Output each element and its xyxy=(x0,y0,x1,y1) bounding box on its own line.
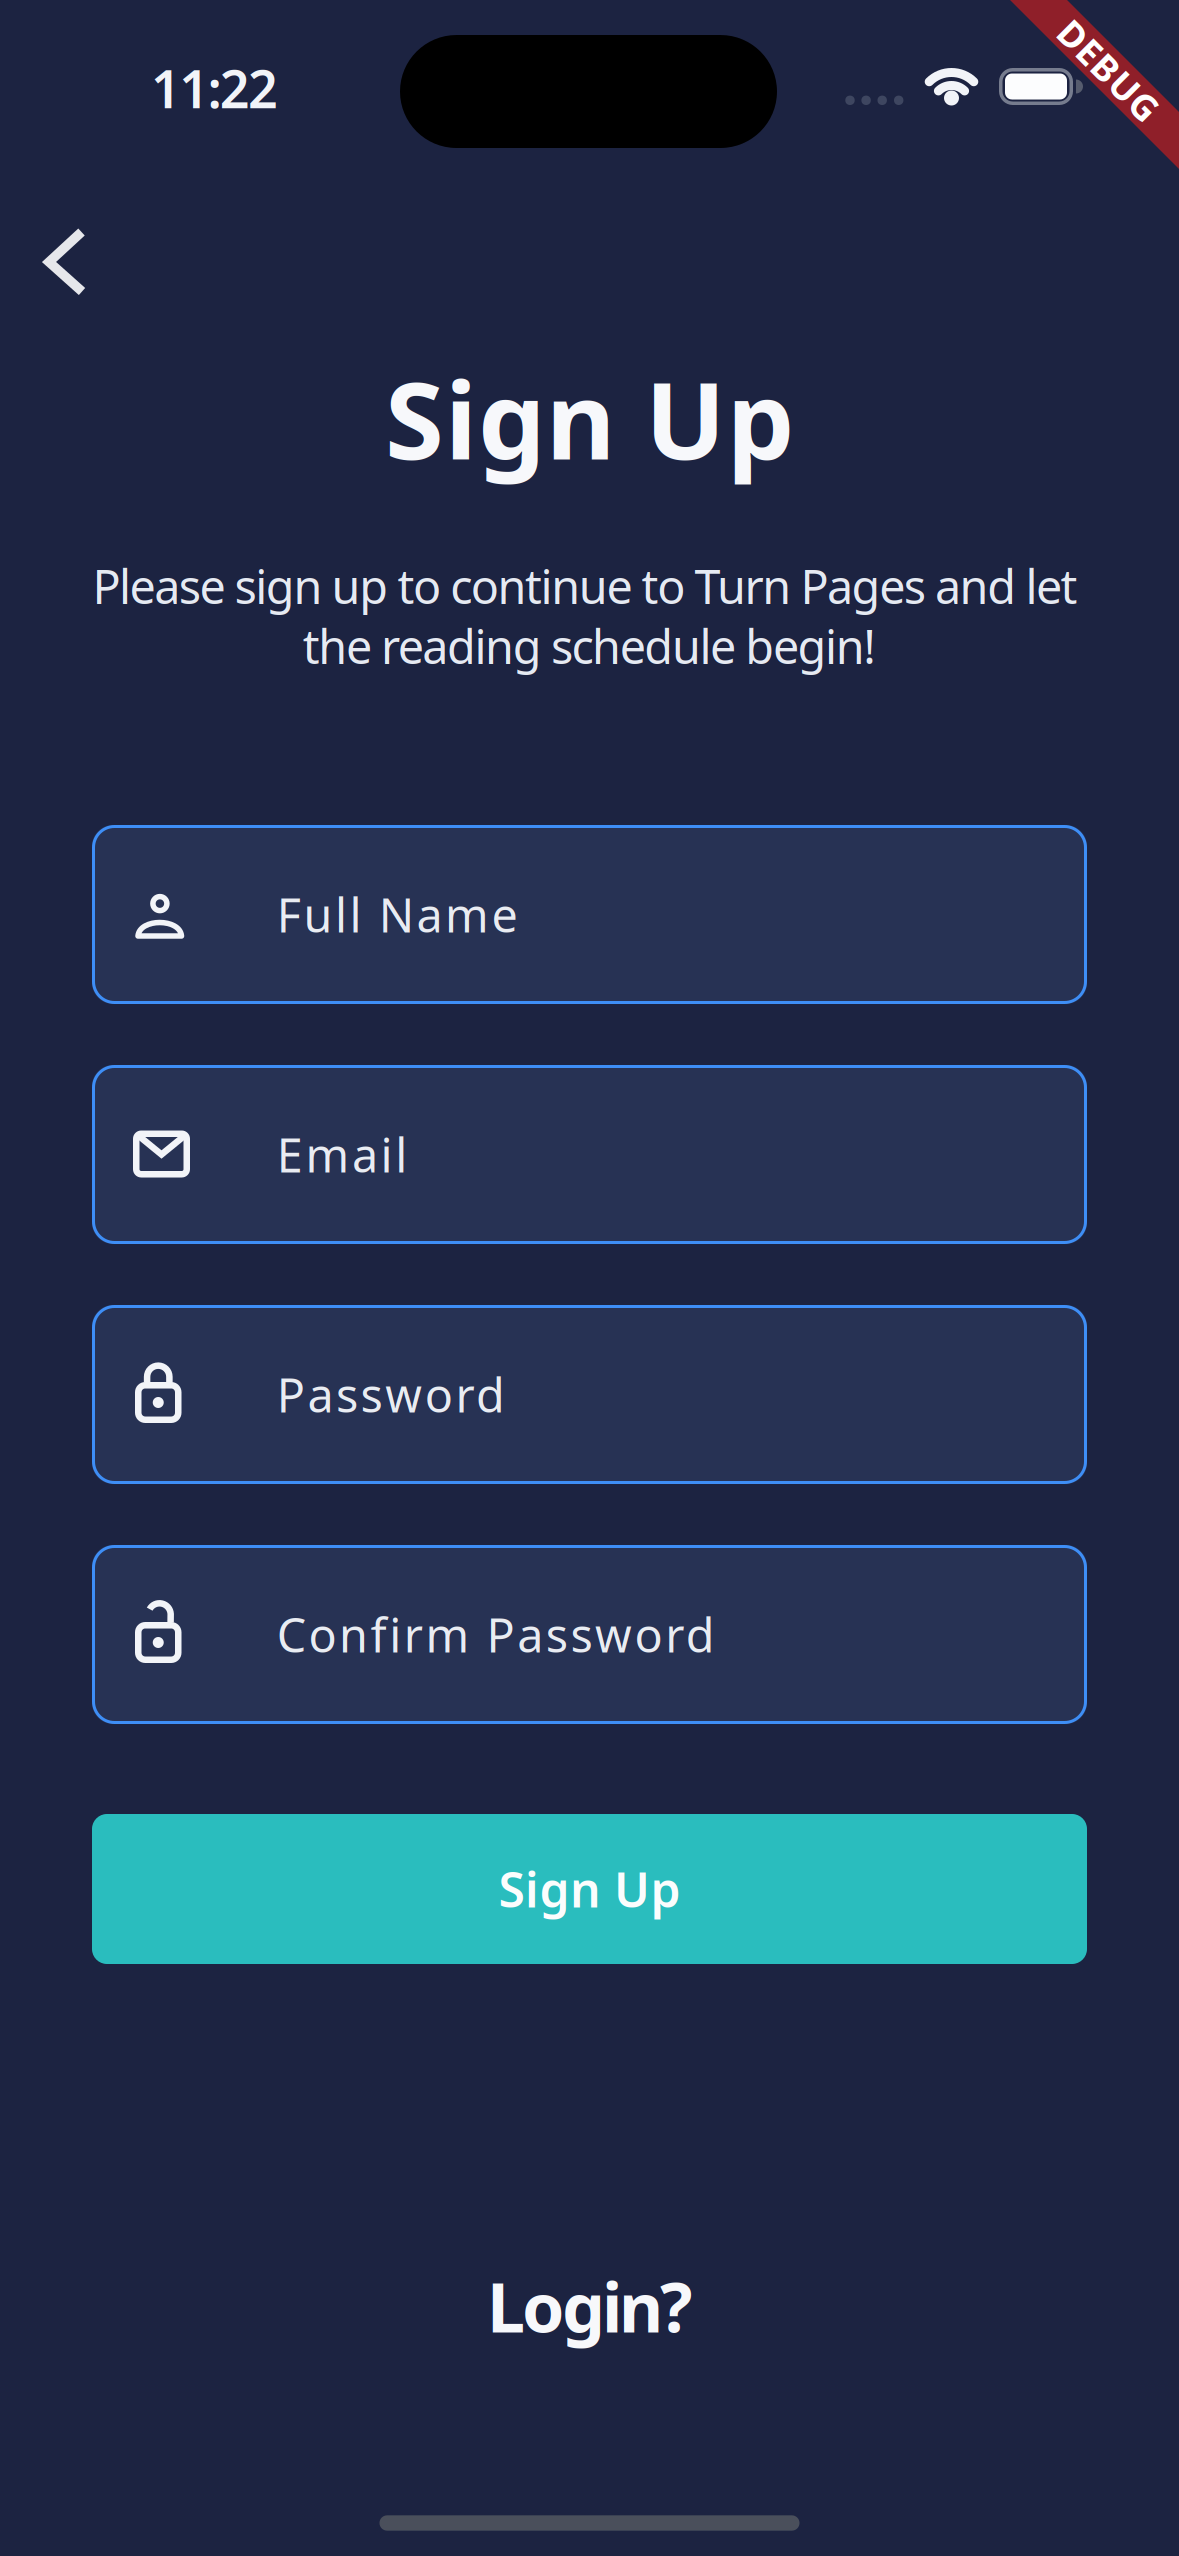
staticText: 11:22 xyxy=(151,53,278,123)
staticText: Sign Up xyxy=(498,1857,680,1921)
button[interactable]: Email xyxy=(92,1065,1087,1244)
staticText: Email xyxy=(277,1123,407,1185)
staticText: the reading schedule begin! xyxy=(303,615,876,677)
staticText: Full Name xyxy=(277,883,518,945)
staticText: Sign Up xyxy=(385,347,794,489)
staticText: Please sign up to continue to Turn Pages… xyxy=(92,555,1078,617)
button[interactable]: Sign Up xyxy=(92,1814,1087,1964)
button[interactable]: Back xyxy=(39,222,92,302)
staticText: DEBUG xyxy=(1045,46,1172,94)
button[interactable]: Full Name xyxy=(92,825,1087,1004)
button[interactable]: Password xyxy=(92,1305,1087,1484)
staticText: Password xyxy=(277,1363,505,1425)
staticText: Login? xyxy=(487,2261,692,2351)
button[interactable]: Confirm Password xyxy=(92,1545,1087,1724)
staticText: Confirm Password xyxy=(277,1603,715,1665)
button[interactable]: Login? xyxy=(487,2261,692,2351)
